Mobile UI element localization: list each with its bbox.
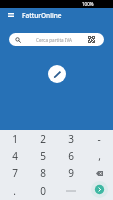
button[interactable]: 0: [29, 182, 57, 200]
button[interactable]: 7: [0, 164, 29, 182]
button[interactable]: 8: [29, 164, 57, 182]
button[interactable]: 1: [0, 130, 29, 147]
button[interactable]: Backspace: [85, 164, 113, 182]
button[interactable]: Space: [57, 182, 85, 200]
button[interactable]: Scan QR code: [87, 35, 96, 44]
button[interactable]: New invoice: [48, 65, 66, 83]
button[interactable]: Open navigation menu: [5, 9, 17, 21]
staticText: 9: [68, 166, 74, 180]
staticText: 0: [40, 184, 46, 198]
staticText: -: [97, 132, 101, 146]
staticText: 4: [12, 149, 18, 163]
button[interactable]: 4: [0, 147, 29, 164]
staticText: .: [13, 184, 16, 198]
button[interactable]: 6: [57, 147, 85, 164]
staticText: 1: [12, 132, 18, 146]
button[interactable]: 3: [57, 130, 85, 147]
button[interactable]: .: [0, 182, 29, 200]
staticText: 100%: [82, 1, 94, 7]
button[interactable]: -: [85, 130, 113, 147]
staticText: FatturOnline: [22, 11, 62, 20]
staticText: 7: [12, 166, 18, 180]
staticText: 8: [40, 166, 46, 180]
staticText: ,: [98, 149, 101, 163]
staticText: 5: [40, 149, 46, 163]
button[interactable]: 9: [57, 164, 85, 182]
button[interactable]: 2: [29, 130, 57, 147]
button[interactable]: Cerca partita IVA: [9, 33, 104, 46]
staticText: Cerca partita IVA: [36, 37, 72, 43]
staticText: 3: [68, 132, 74, 146]
button[interactable]: Search: [85, 182, 113, 200]
button[interactable]: ,: [85, 147, 113, 164]
staticText: 6: [68, 149, 74, 163]
staticText: 2: [40, 132, 46, 146]
button[interactable]: 5: [29, 147, 57, 164]
